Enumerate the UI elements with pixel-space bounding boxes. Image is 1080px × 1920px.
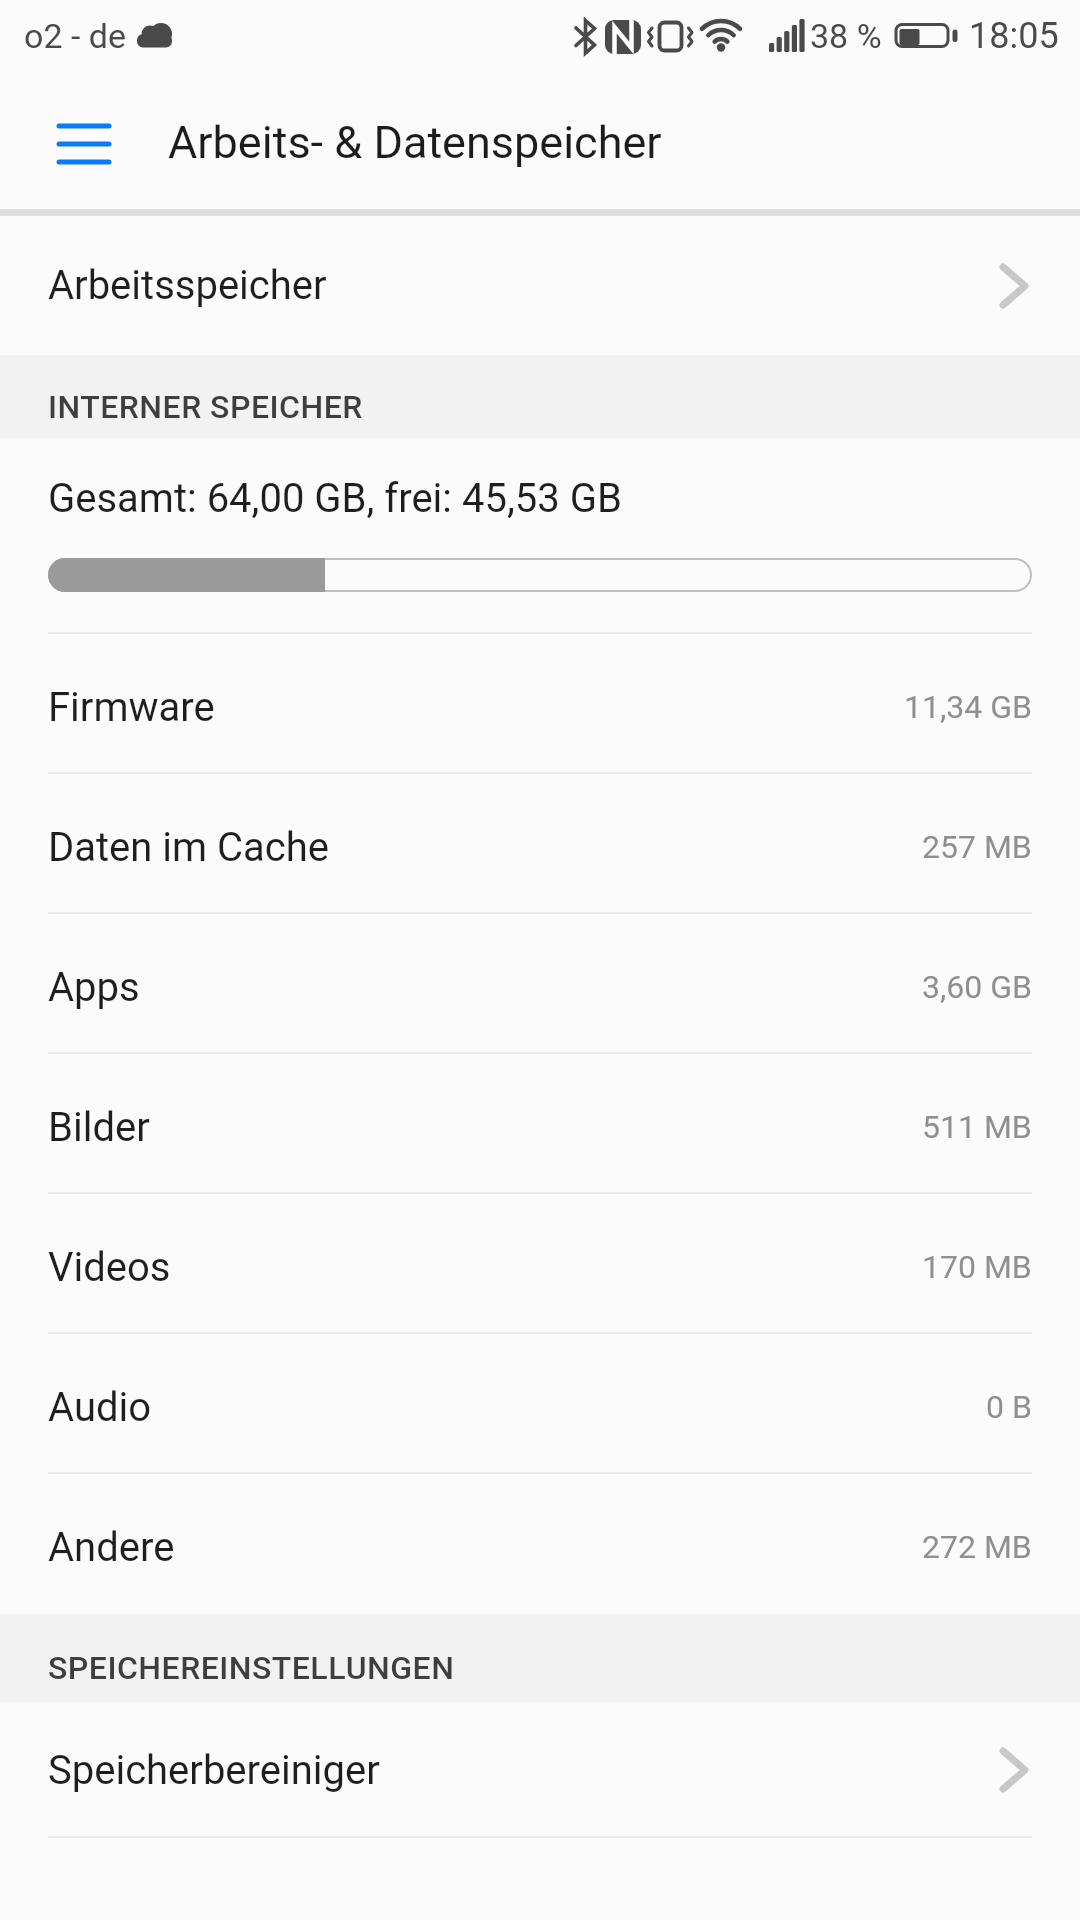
button[interactable]: Apps (0, 914, 1080, 1054)
staticText: o2 - de (24, 16, 126, 56)
button[interactable]: Audio (0, 1334, 1080, 1474)
button[interactable]: Daten im Cache (0, 774, 1080, 914)
staticText: Arbeits- & Datenspeicher (168, 116, 662, 169)
button[interactable]: Arbeitsspeicher (0, 216, 1080, 355)
staticText: 0 B (986, 1388, 1032, 1426)
staticText: Bilder (48, 1104, 150, 1151)
staticText: Audio (48, 1384, 152, 1431)
staticText: 38 % (810, 16, 882, 56)
button[interactable]: Videos (0, 1194, 1080, 1334)
staticText: INTERNER SPEICHER (48, 388, 363, 426)
staticText: Videos (48, 1244, 171, 1291)
staticText: 257 MB (922, 828, 1032, 866)
staticText: 511 MB (922, 1108, 1032, 1146)
button[interactable] (0, 72, 150, 209)
button[interactable]: Andere (0, 1474, 1080, 1614)
staticText: Speicherbereiniger (48, 1747, 380, 1794)
staticText: Daten im Cache (48, 824, 330, 871)
staticText: Arbeitsspeicher (48, 262, 327, 309)
button[interactable]: Speicherbereiniger (0, 1702, 1080, 1838)
staticText: SPEICHEREINSTELLUNGEN (48, 1649, 455, 1687)
staticText: Apps (48, 964, 140, 1011)
staticText: Andere (48, 1524, 175, 1571)
staticText: 11,34 GB (904, 688, 1032, 726)
staticText: 18:05 (969, 15, 1059, 57)
staticText: 272 MB (922, 1528, 1032, 1566)
staticText: 170 MB (922, 1248, 1032, 1286)
staticText: Gesamt: 64,00 GB, frei: 45,53 GB (48, 475, 622, 522)
staticText: Firmware (48, 684, 215, 731)
button[interactable]: Firmware (0, 634, 1080, 774)
staticText: 3,60 GB (922, 968, 1032, 1006)
button[interactable]: Bilder (0, 1054, 1080, 1194)
